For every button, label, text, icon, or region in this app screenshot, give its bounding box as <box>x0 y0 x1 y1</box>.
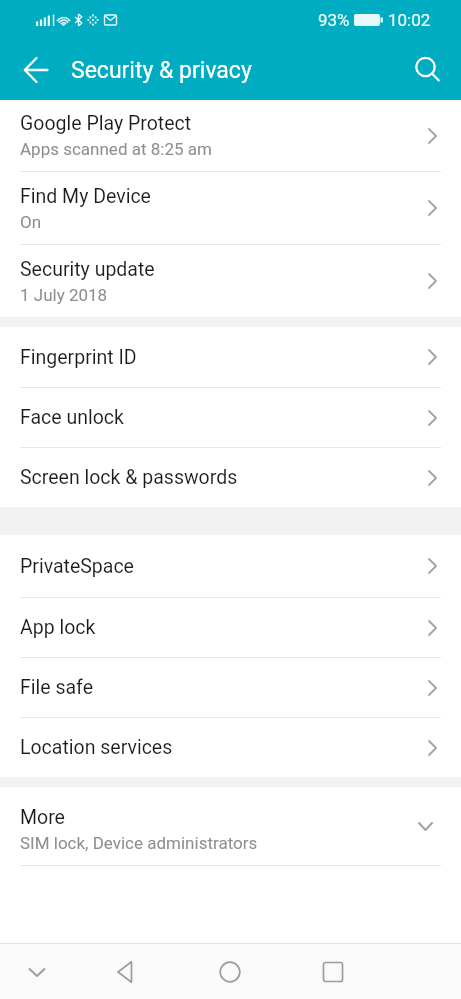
button[interactable]: More <box>0 787 461 865</box>
staticText: 10:02 <box>388 10 431 30</box>
button[interactable] <box>309 944 357 999</box>
button[interactable]: PrivateSpace <box>0 535 461 597</box>
staticText: PrivateSpace <box>20 555 134 578</box>
button[interactable]: Google Play Protect <box>0 100 461 171</box>
staticText: App lock <box>20 616 96 639</box>
button[interactable]: Screen lock & passwords <box>0 448 461 507</box>
staticText: File safe <box>20 676 94 699</box>
staticText: 1 July 2018 <box>20 285 108 305</box>
button[interactable] <box>206 944 254 999</box>
staticText: Apps scanned at 8:25 am <box>20 139 212 159</box>
staticText: On <box>20 212 42 232</box>
button[interactable]: Face unlock <box>0 388 461 447</box>
button[interactable] <box>13 944 61 999</box>
staticText: More <box>20 806 65 829</box>
button[interactable]: Security update <box>0 245 461 317</box>
button[interactable] <box>405 48 449 92</box>
button[interactable]: App lock <box>0 598 461 657</box>
staticText: SIM lock, Device administrators <box>20 833 258 853</box>
button[interactable]: Location services <box>0 718 461 777</box>
button[interactable] <box>102 944 150 999</box>
staticText: Location services <box>20 736 173 759</box>
staticText: Security update <box>20 258 155 281</box>
staticText: Face unlock <box>20 406 124 429</box>
button[interactable]: File safe <box>0 658 461 717</box>
button[interactable] <box>16 50 56 90</box>
staticText: Security & privacy <box>71 57 252 84</box>
staticText: Fingerprint ID <box>20 346 137 369</box>
button[interactable]: Find My Device <box>0 172 461 244</box>
staticText: Google Play Protect <box>20 112 192 135</box>
button[interactable]: Fingerprint ID <box>0 327 461 387</box>
staticText: Find My Device <box>20 185 151 208</box>
staticText: Screen lock & passwords <box>20 466 238 489</box>
staticText: 93% <box>318 10 350 30</box>
